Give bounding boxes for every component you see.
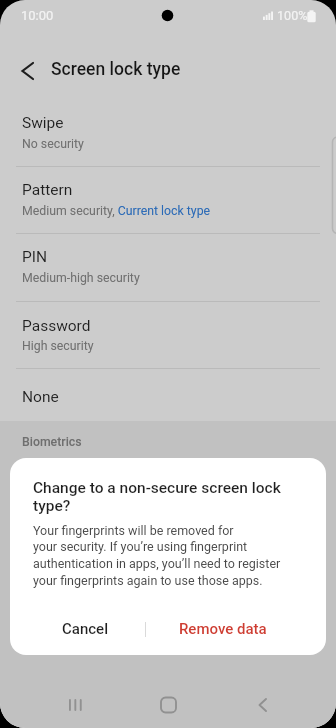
button[interactable]: Cancel	[23, 615, 147, 643]
staticText: None	[22, 388, 59, 406]
button[interactable]: Password	[0, 301, 336, 368]
staticText: Medium-high security	[22, 271, 140, 285]
button[interactable]: Pattern	[0, 166, 336, 233]
staticText: Cancel	[62, 620, 109, 638]
button[interactable]	[57, 691, 95, 719]
button[interactable]: Remove data	[145, 615, 300, 643]
staticText: High security	[22, 339, 94, 353]
staticText: Medium security, Current lock type	[22, 204, 211, 218]
button[interactable]: None	[0, 368, 336, 424]
button[interactable]	[149, 691, 187, 719]
button[interactable]: Swipe	[0, 99, 336, 166]
staticText: Pattern	[22, 181, 73, 199]
staticText: Screen lock type	[51, 59, 181, 80]
button[interactable]	[244, 691, 282, 719]
staticText: 10:00	[21, 8, 54, 23]
button[interactable]	[12, 55, 46, 87]
staticText: Change to a non-secure screen lock type?	[33, 479, 281, 515]
staticText: PIN	[22, 248, 48, 266]
staticText: Biometrics	[22, 435, 82, 449]
staticText: Remove data	[179, 620, 267, 638]
staticText: Swipe	[22, 114, 64, 132]
staticText: 100%	[277, 8, 308, 23]
staticText: Password	[22, 317, 91, 335]
staticText: No security	[22, 137, 84, 151]
button[interactable]: PIN	[0, 233, 336, 301]
staticText: Your fingerprints will be removed for yo…	[33, 523, 281, 589]
